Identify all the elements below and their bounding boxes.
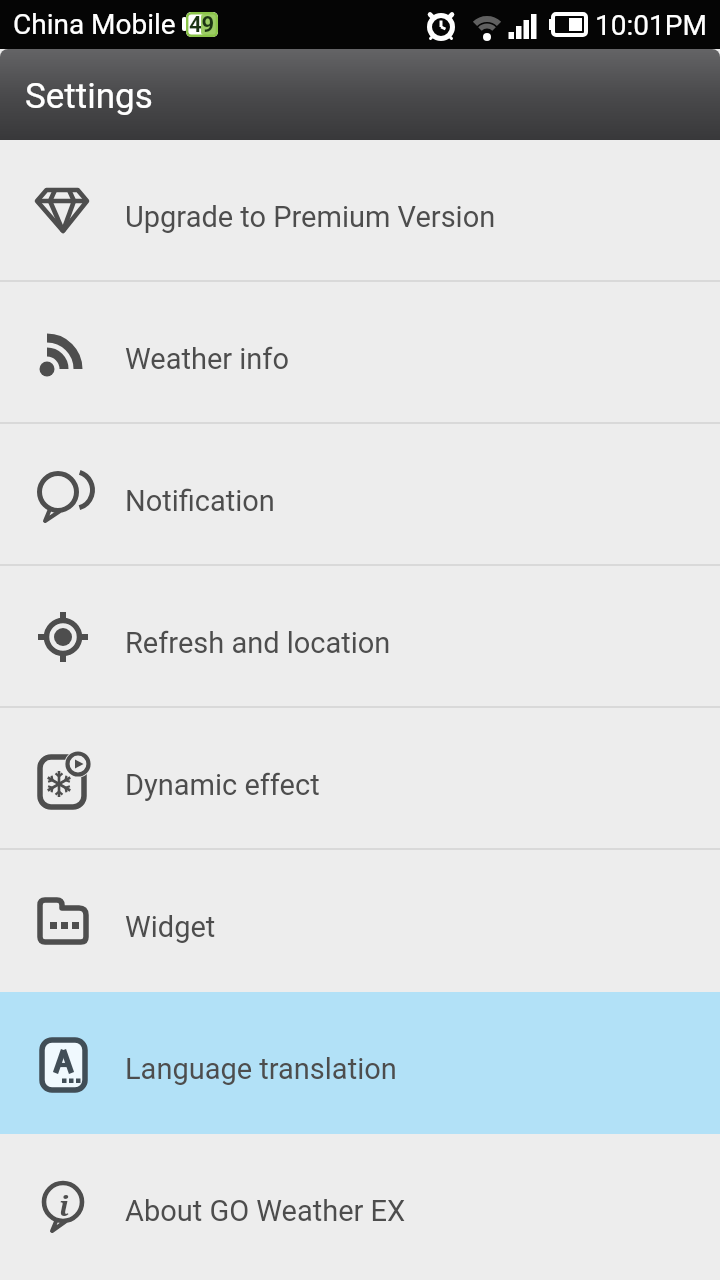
staticText: 10:01PM xyxy=(595,9,707,42)
button[interactable]: Weather info xyxy=(0,282,720,424)
staticText: Widget xyxy=(125,910,216,944)
staticText: 49 xyxy=(189,12,215,38)
staticText: Weather info xyxy=(125,342,289,376)
button[interactable]: Dynamic effect xyxy=(0,708,720,850)
staticText: Refresh and location xyxy=(125,626,391,660)
staticText: Settings xyxy=(25,76,153,117)
staticText: Upgrade to Premium Version xyxy=(125,200,496,234)
button[interactable]: Refresh and location xyxy=(0,566,720,708)
staticText: i xyxy=(59,1186,69,1224)
staticText: Dynamic effect xyxy=(125,768,320,802)
button[interactable]: Notification xyxy=(0,424,720,566)
staticText: About GO Weather EX xyxy=(125,1194,406,1228)
button[interactable]: Widget xyxy=(0,850,720,992)
staticText: Language translation xyxy=(125,1052,397,1086)
button[interactable]: Upgrade to Premium Version xyxy=(0,140,720,282)
button[interactable]: i xyxy=(0,1134,720,1276)
staticText: China Mobile xyxy=(13,8,176,41)
staticText: Notification xyxy=(125,484,275,518)
button[interactable]: Language translation xyxy=(0,992,720,1134)
